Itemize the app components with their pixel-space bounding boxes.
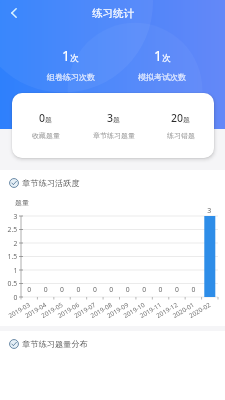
staticText: 3题 (107, 111, 121, 125)
staticText: 1次 (154, 46, 171, 65)
button[interactable]: 0题 (12, 111, 80, 140)
staticText: 章节练习活跃度 (22, 178, 80, 188)
button[interactable]: 章节练习题量分布 (9, 331, 225, 357)
button[interactable]: 1次 (25, 46, 116, 82)
staticText: 练习错题 (167, 131, 195, 140)
staticText: 章节练习题量分布 (22, 339, 88, 349)
button[interactable]: 章节练习活跃度 (9, 170, 225, 196)
staticText: 0题 (39, 111, 53, 125)
button[interactable]: 1次 (116, 46, 208, 82)
staticText: 1次 (62, 46, 79, 65)
staticText: 20题 (171, 111, 191, 125)
staticText: 练习统计 (92, 7, 134, 20)
staticText: 模拟考试次数 (138, 72, 186, 82)
button[interactable]: 20题 (147, 111, 214, 140)
staticText: 组卷练习次数 (47, 72, 95, 82)
staticText: 收藏题量 (32, 131, 60, 140)
button[interactable]: 3题 (80, 111, 147, 140)
staticText: 章节练习题量 (93, 131, 135, 140)
button[interactable]: Back (4, 3, 24, 23)
